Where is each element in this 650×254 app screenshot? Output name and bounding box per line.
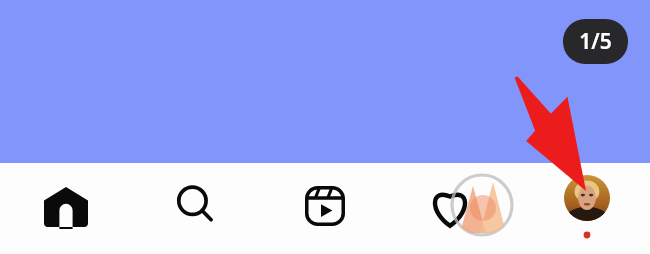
staticText: 1/5 <box>579 27 612 56</box>
button[interactable]: Likes <box>421 177 479 237</box>
button[interactable]: Search <box>168 175 224 235</box>
button[interactable]: Profile <box>559 170 615 240</box>
button[interactable]: Home <box>38 177 94 237</box>
button[interactable]: Reels <box>297 176 353 236</box>
button[interactable]: 1/5 <box>563 19 628 64</box>
